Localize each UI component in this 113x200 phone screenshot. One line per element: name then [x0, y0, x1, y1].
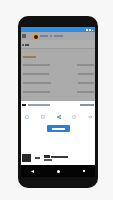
button[interactable] [21, 69, 95, 78]
button[interactable]: Back [28, 167, 36, 175]
button[interactable]: Home [54, 167, 62, 175]
button[interactable]: Sound [70, 113, 77, 120]
button[interactable]: Profile [32, 33, 39, 40]
button[interactable] [21, 78, 95, 87]
button[interactable]: Copy [39, 113, 46, 120]
button[interactable] [21, 40, 95, 49]
button[interactable]: Recents [80, 167, 88, 175]
button[interactable] [21, 87, 95, 96]
button[interactable]: Share [55, 113, 62, 120]
button[interactable] [47, 125, 70, 132]
button[interactable]: More [86, 113, 93, 120]
button[interactable] [21, 60, 95, 69]
button[interactable] [21, 151, 95, 165]
button[interactable]: Favorite [23, 113, 30, 120]
